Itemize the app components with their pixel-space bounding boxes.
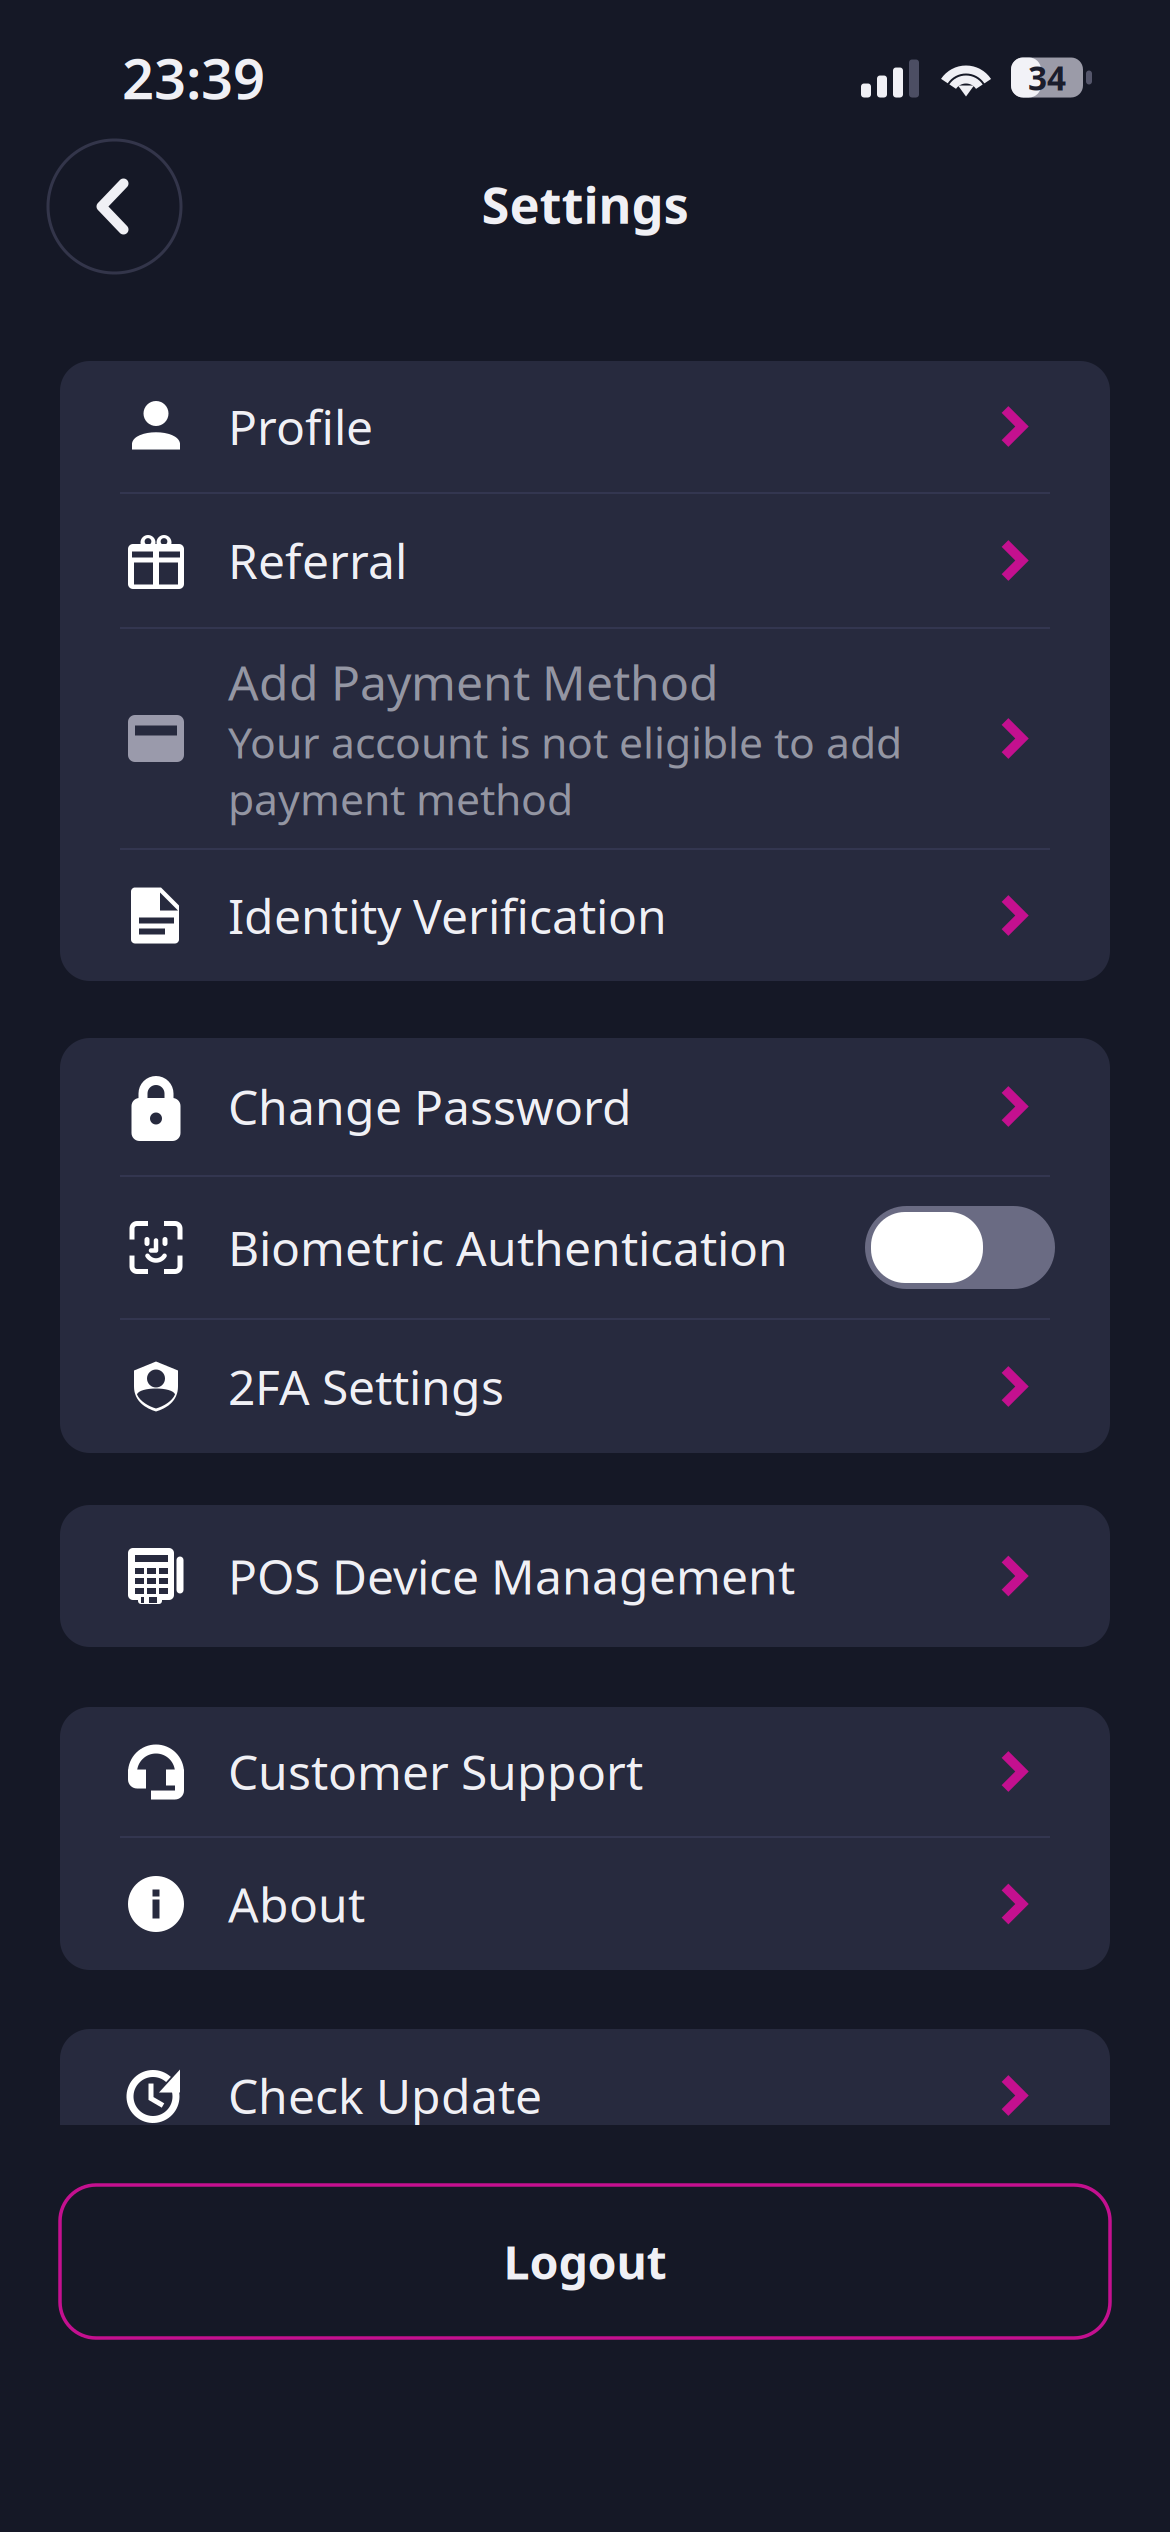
button[interactable]: Biometric Authentication <box>60 1177 1110 1318</box>
button[interactable]: 2FA Settings <box>60 1320 1110 1453</box>
button[interactable]: About <box>60 1838 1110 1970</box>
staticText: About <box>228 1872 365 1936</box>
button[interactable]: Customer Support <box>60 1707 1110 1836</box>
staticText: Identity Verification <box>228 884 667 947</box>
staticText: Profile <box>228 395 373 458</box>
staticText: Your account is not eligible to add paym… <box>228 714 902 827</box>
button[interactable]: POS Device Management <box>60 1505 1110 1647</box>
button[interactable]: Profile <box>60 361 1110 492</box>
button[interactable]: Logout <box>60 2185 1110 2338</box>
staticText: Check Update <box>228 2064 542 2127</box>
button[interactable]: Referral <box>60 494 1110 627</box>
button[interactable]: Add Payment Method <box>60 629 1110 848</box>
staticText: 23:39 <box>122 40 265 115</box>
staticText: Settings <box>481 170 688 238</box>
staticText: Add Payment Method <box>228 650 719 714</box>
button[interactable]: Check Update <box>60 2029 1110 2162</box>
staticText: Change Password <box>228 1075 632 1138</box>
staticText: 34 <box>1028 55 1066 100</box>
staticText: Logout <box>503 2230 666 2292</box>
staticText: Customer Support <box>228 1740 643 1803</box>
staticText: 2FA Settings <box>228 1355 504 1418</box>
staticText: Referral <box>228 529 407 592</box>
staticText: POS Device Management <box>228 1544 795 1608</box>
button[interactable]: Change Password <box>60 1038 1110 1175</box>
staticText: Biometric Authentication <box>228 1216 788 1279</box>
button[interactable]: Identity Verification <box>60 850 1110 981</box>
button[interactable]: Back <box>48 140 181 273</box>
